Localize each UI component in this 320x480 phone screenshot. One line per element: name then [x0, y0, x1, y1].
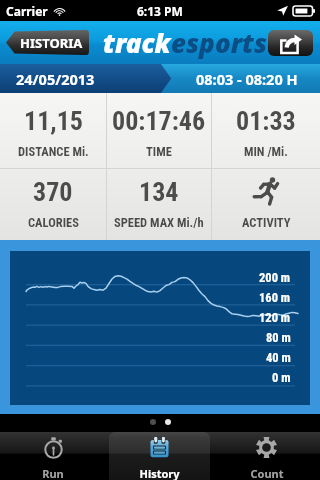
button[interactable]: 134 [107, 169, 211, 240]
staticText: 160 m [259, 290, 291, 305]
button[interactable]: 11,15 [0, 93, 106, 168]
staticText: esports [171, 25, 267, 60]
staticText: 6:13 PM [137, 3, 183, 19]
staticText: DISTANCE Mi. [18, 144, 89, 159]
staticText: HISTORIA [20, 34, 83, 52]
staticText: 40 m [266, 350, 291, 365]
staticText: 200 m [259, 270, 291, 285]
button[interactable]: Run [3, 432, 103, 480]
staticText: Carrier [6, 3, 48, 19]
staticText: History [139, 466, 180, 480]
staticText: 11,15 [24, 106, 83, 136]
staticText: 00:17:46 [112, 106, 206, 136]
staticText: 0 m [272, 370, 291, 385]
staticText: 08:03 - 08:20 H [196, 69, 298, 89]
button[interactable]: HISTORIA [3, 30, 89, 55]
button[interactable]: History [109, 432, 210, 480]
button[interactable]: Count [216, 432, 317, 480]
button[interactable]: 01:33 [212, 93, 320, 168]
staticText: TIME [146, 144, 172, 159]
staticText: 80 m [266, 330, 291, 345]
staticText: 120 m [259, 310, 291, 325]
staticText: 24/05/2013 [16, 69, 95, 89]
button[interactable]: Share [268, 30, 313, 56]
staticText: 01:33 [236, 106, 296, 136]
button[interactable]: 00:17:46 [107, 93, 211, 168]
staticText: Run [42, 466, 64, 480]
staticText: CALORIES [28, 215, 79, 230]
staticText: SPEED MAX Mi./h [114, 215, 204, 230]
staticText: 370 [33, 177, 73, 207]
staticText: MIN /Mi. [244, 144, 288, 159]
staticText: track [103, 25, 171, 60]
button[interactable]: 370 [0, 169, 106, 240]
staticText: 134 [139, 177, 179, 207]
staticText: ACTIVITY [242, 215, 291, 230]
staticText: Count [250, 466, 284, 480]
button[interactable]: ACTIVITY [212, 169, 320, 240]
